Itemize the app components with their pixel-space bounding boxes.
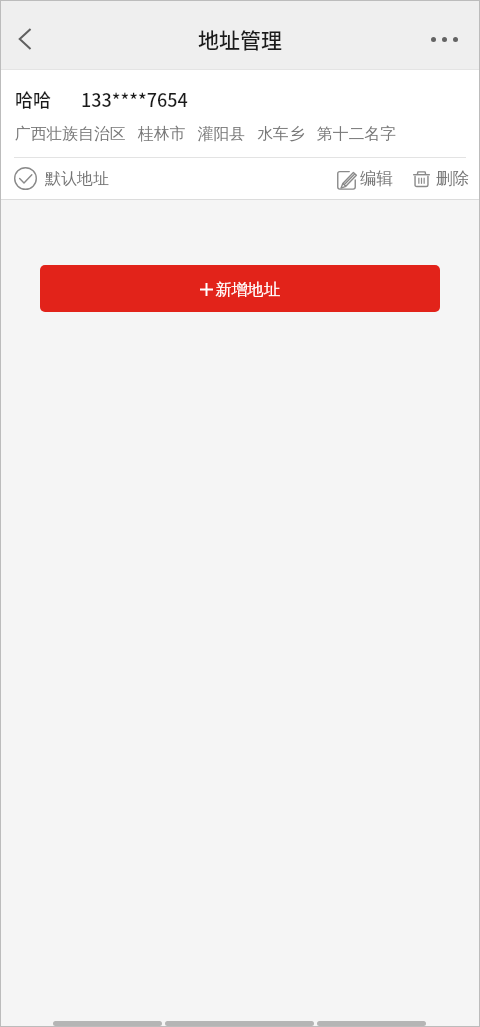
staticText: 哈哈 [15,86,51,112]
button[interactable]: 新增地址 [40,265,440,312]
button[interactable]: More options [420,15,468,63]
staticText: 编辑 [360,168,394,189]
staticText: 默认地址 [45,169,109,189]
button[interactable]: 哈哈 [0,70,480,200]
staticText: 地址管理 [198,24,282,54]
button[interactable]: Back [1,15,49,63]
staticText: 新增地址 [215,279,280,299]
staticText: 广西壮族自治区 桂林市 灌阳县 水车乡 第十二名字 [15,122,397,144]
staticText: 删除 [436,168,470,189]
button[interactable]: 编辑 [335,167,394,190]
button[interactable]: 默认地址 [14,167,109,190]
staticText: 133****7654 [81,86,188,112]
button[interactable]: 删除 [412,168,470,189]
